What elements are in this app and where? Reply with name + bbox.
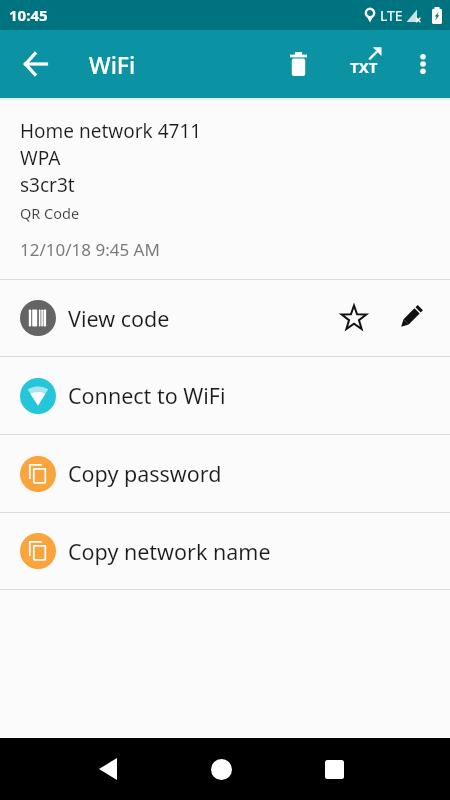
staticText: 10:45	[9, 5, 48, 25]
button[interactable]	[88, 749, 128, 789]
button[interactable]	[274, 40, 322, 88]
staticText: Connect to WiFi	[68, 381, 226, 410]
staticText: 12/10/18 9:45 AM	[20, 238, 160, 261]
button[interactable]	[14, 42, 58, 86]
staticText: Copy password	[68, 459, 222, 488]
button[interactable]: Copy password	[0, 435, 450, 512]
button[interactable]	[201, 749, 241, 789]
button[interactable]	[314, 749, 354, 789]
button[interactable]: View code	[0, 280, 450, 356]
staticText: TXT	[350, 57, 378, 77]
staticText: View code	[68, 304, 170, 333]
staticText: WiFi	[89, 49, 136, 80]
button[interactable]	[401, 42, 445, 86]
staticText: LTE	[380, 6, 403, 25]
button[interactable]: Connect to WiFi	[0, 357, 450, 434]
button[interactable]	[334, 298, 374, 338]
staticText: Home network 4711 WPA s3cr3t	[20, 118, 202, 198]
button[interactable]	[390, 298, 430, 338]
staticText: QR Code	[20, 203, 80, 223]
staticText: Copy network name	[68, 537, 271, 566]
button[interactable]: TXT	[338, 38, 390, 90]
button[interactable]: Copy network name	[0, 513, 450, 589]
